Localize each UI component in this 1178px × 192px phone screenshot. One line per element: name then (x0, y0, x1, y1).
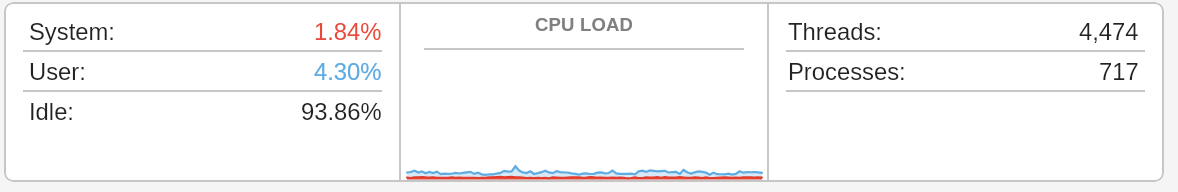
staticText: 1.84% (314, 18, 382, 45)
staticText: Threads: (788, 18, 882, 45)
staticText: Processes: (788, 58, 906, 85)
staticText: User: (29, 58, 86, 85)
button[interactable]: System: (6, 12, 399, 52)
staticText: 4.30% (314, 58, 382, 85)
button[interactable]: User: (6, 52, 399, 92)
button[interactable]: Processes: (769, 52, 1162, 92)
staticText: 4,474 (1079, 18, 1139, 45)
staticText: 717 (1099, 58, 1139, 85)
staticText: 93.86% (301, 98, 382, 125)
staticText: CPU LOAD (401, 14, 767, 35)
staticText: System: (29, 18, 115, 45)
staticText: Idle: (29, 98, 74, 125)
button[interactable]: Idle: (6, 92, 399, 132)
button[interactable]: Threads: (769, 12, 1162, 52)
